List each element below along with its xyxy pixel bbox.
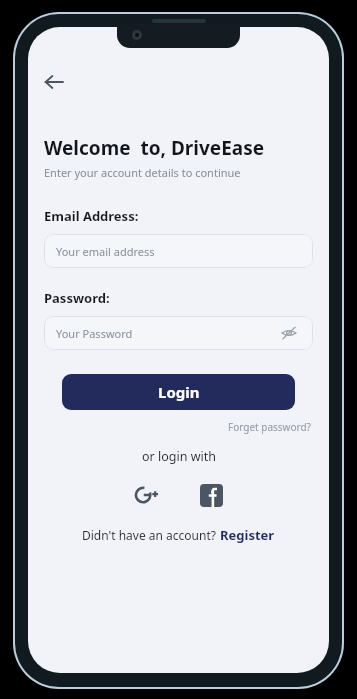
staticText: Welcome to, DriveEase	[44, 135, 265, 161]
button[interactable]: Login	[62, 374, 295, 410]
staticText: Forget password?	[228, 420, 311, 434]
button[interactable]: Your Password	[44, 316, 313, 350]
button[interactable]: Register	[220, 526, 275, 544]
staticText: Login	[158, 382, 200, 402]
staticText: or login with	[142, 448, 216, 465]
staticText: Enter your account details to continue	[44, 165, 241, 180]
staticText: Your email address	[56, 244, 155, 259]
button[interactable]: Forget password?	[226, 418, 313, 436]
staticText: Register	[220, 526, 275, 544]
staticText: Your Password	[56, 326, 133, 341]
button[interactable]: Your email address	[44, 234, 313, 268]
staticText: Password:	[44, 289, 110, 307]
button[interactable]: Sign in with Google	[130, 478, 164, 512]
staticText: Email Address:	[44, 207, 139, 225]
button[interactable]: Toggle password visibility	[279, 323, 299, 343]
button[interactable]: Back	[34, 62, 74, 102]
staticText: Didn't have an account?	[82, 527, 220, 543]
button[interactable]: Sign in with Facebook	[194, 478, 228, 512]
